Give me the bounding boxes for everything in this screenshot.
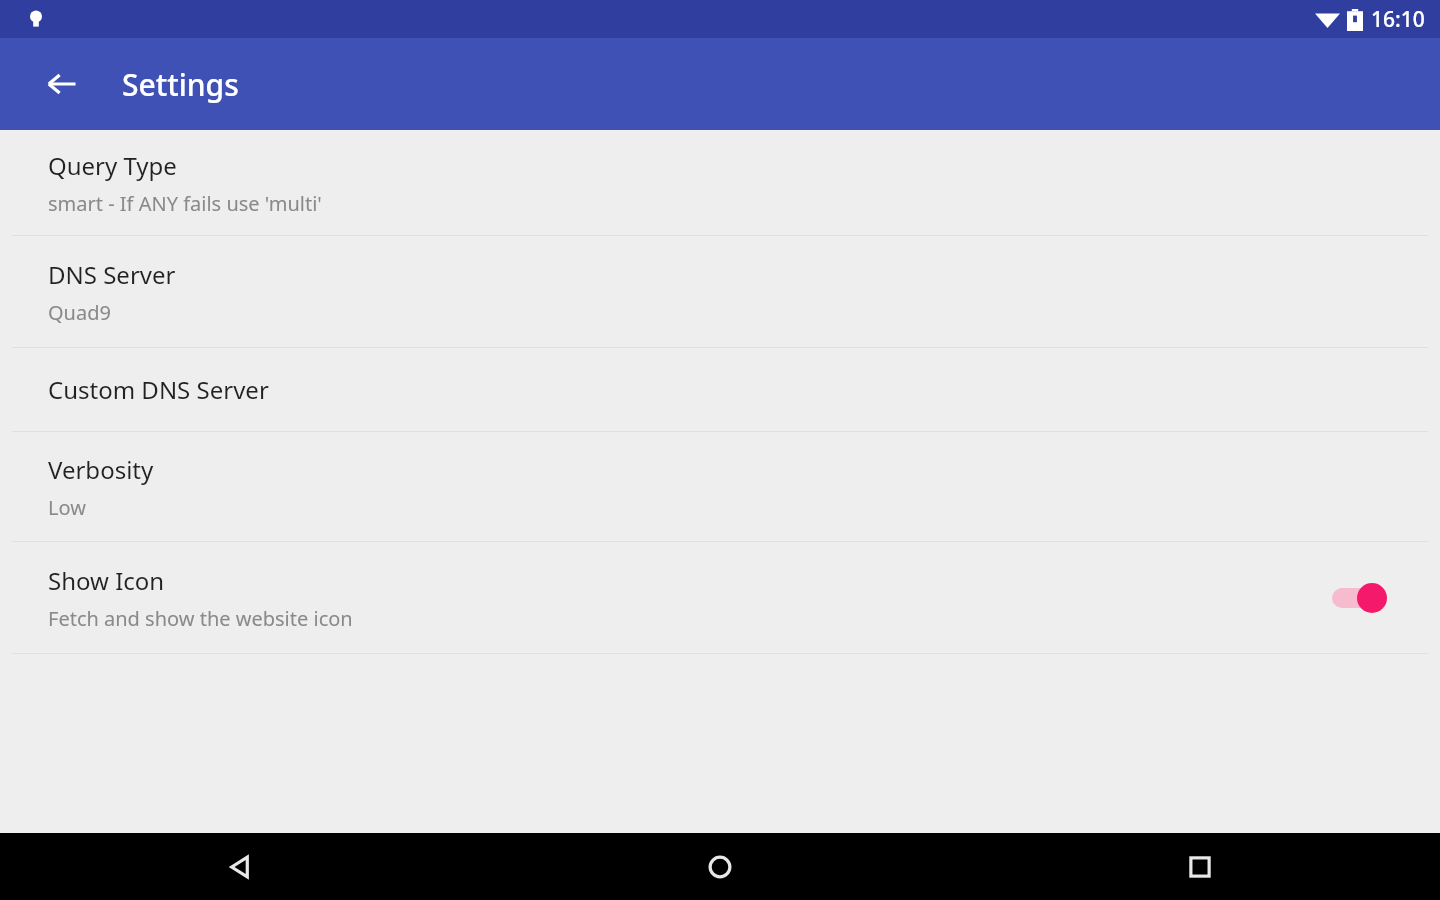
staticText: DNS Server [48,258,176,291]
staticText: Verbosity [48,453,154,486]
staticText: Custom DNS Server [48,373,269,406]
button[interactable]: Custom DNS Server [0,348,1440,431]
button[interactable]: DNS Server [0,236,1440,347]
button[interactable]: Back [0,833,480,900]
staticText: Query Type [48,149,177,182]
staticText: 16:10 [1371,5,1425,34]
button[interactable]: Query Type [0,130,1440,235]
button[interactable]: Verbosity [0,432,1440,541]
staticText: smart - If ANY fails use 'multi' [48,190,322,217]
staticText: Show Icon [48,564,165,597]
staticText: Settings [122,64,239,105]
button[interactable]: Recent apps [960,833,1440,900]
staticText: Fetch and show the website icon [48,605,353,632]
button[interactable]: Back [34,56,90,112]
staticText: Low [48,494,86,521]
staticText: Quad9 [48,299,111,326]
button[interactable]: Show Icon [0,542,1440,653]
button[interactable]: Home [480,833,960,900]
button[interactable]: Show Icon toggle [1330,576,1392,620]
